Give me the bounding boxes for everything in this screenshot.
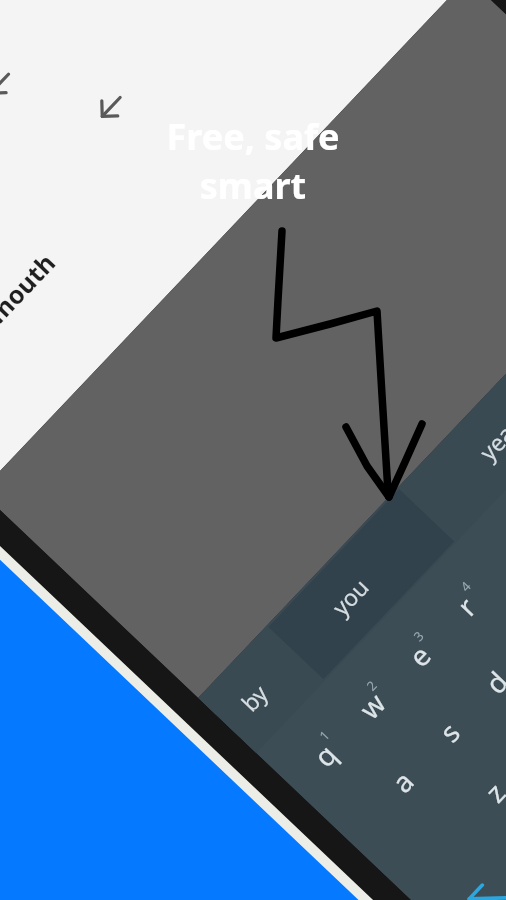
button[interactable]: Free, safe, smart keyboard promo [0, 0, 506, 900]
